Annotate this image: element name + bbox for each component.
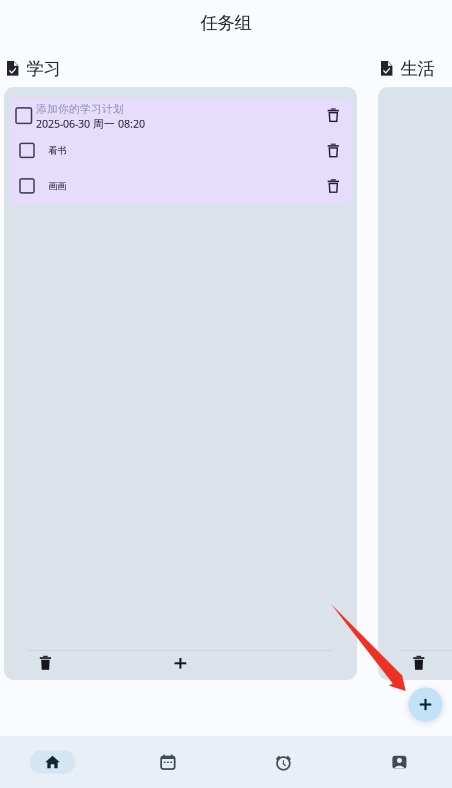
button[interactable]: Delete group bbox=[399, 649, 439, 677]
staticText: 画画 bbox=[48, 180, 66, 192]
button[interactable]: Calendar bbox=[111, 736, 224, 788]
button[interactable]: Delete group bbox=[25, 649, 65, 677]
button[interactable]: 生活 bbox=[381, 58, 441, 80]
staticText: 生活 bbox=[400, 58, 434, 79]
button[interactable]: 画画 bbox=[10, 168, 350, 203]
staticText: 添加你的学习计划 bbox=[36, 102, 124, 116]
button[interactable]: Add task bbox=[160, 649, 200, 677]
staticText: 2025-06-30 周一 08:20 bbox=[36, 116, 145, 131]
staticText: 任务组 bbox=[200, 12, 251, 34]
button[interactable]: Profile bbox=[343, 736, 452, 788]
staticText: 看书 bbox=[48, 145, 66, 156]
staticText: 学习 bbox=[26, 58, 60, 79]
button[interactable]: 添加你的学习计划 bbox=[10, 98, 350, 132]
button[interactable]: Add group bbox=[408, 687, 442, 721]
button[interactable]: Home bbox=[0, 736, 109, 788]
button[interactable]: Reminders bbox=[227, 736, 340, 788]
button[interactable]: 看书 bbox=[10, 132, 350, 168]
button[interactable]: 学习 bbox=[7, 58, 67, 80]
